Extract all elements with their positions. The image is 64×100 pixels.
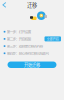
button[interactable]: 立即开启 [44,36,61,41]
staticText: 立即开启 [47,37,59,41]
staticText: 开始迁移 [24,62,40,68]
staticText: 第三步：选择要迁移的内容 [7,44,43,49]
staticText: 第一步：打开设置 [7,29,31,34]
staticText: 第四步：耐心等待迁移完成即可 [7,51,49,56]
staticText: 第二步：开启权限 [7,36,31,41]
button[interactable]: Back [0,0,9,10]
staticText: 迁移 [27,1,37,9]
button[interactable]: 开始迁移 [7,61,56,68]
